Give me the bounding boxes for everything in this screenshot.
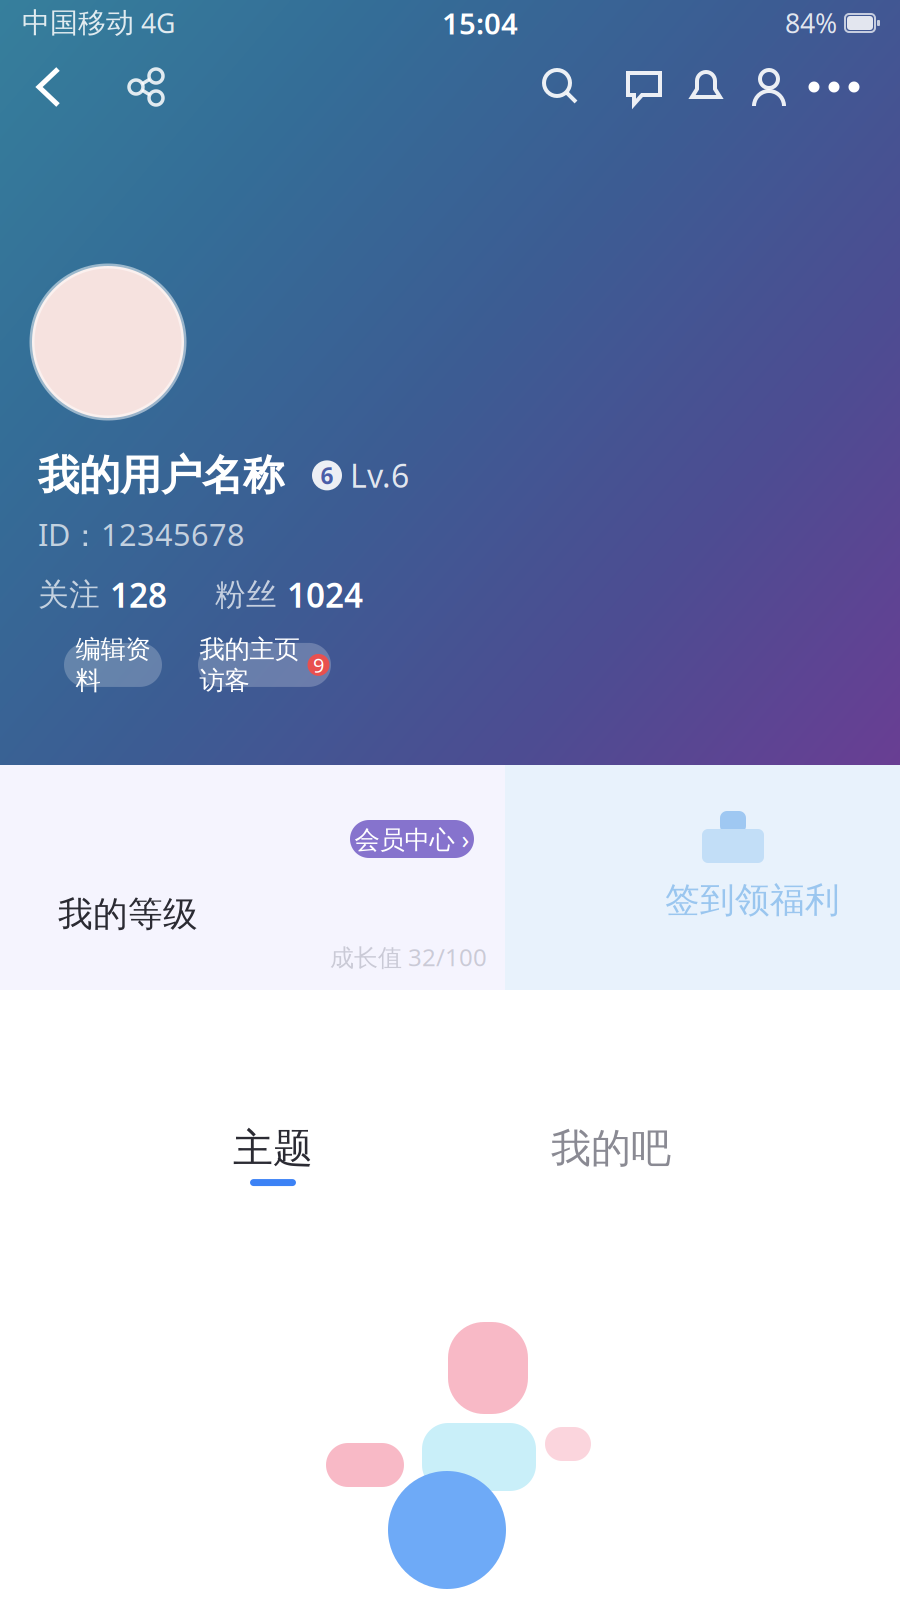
- staticText: 我的等级: [58, 893, 198, 936]
- staticText: 6: [320, 460, 333, 490]
- staticText: 4G: [134, 5, 175, 41]
- staticText: 128: [110, 573, 167, 617]
- staticText: 签到领福利: [665, 879, 840, 922]
- button[interactable]: 头像: [32, 266, 184, 418]
- button[interactable]: 返回: [21, 56, 83, 118]
- button[interactable]: 通知: [677, 58, 735, 116]
- staticText: 编辑资料: [75, 634, 150, 696]
- button[interactable]: 主题: [148, 1090, 398, 1220]
- staticText: Lv.6: [350, 454, 409, 497]
- button[interactable]: 编辑资料: [64, 643, 162, 687]
- staticText: 我的用户名称: [38, 450, 284, 501]
- staticText: 我的主页访客: [199, 634, 299, 696]
- button[interactable]: 更多: [798, 58, 870, 116]
- button[interactable]: 会员中心 ›: [0, 765, 505, 990]
- button[interactable]: 关注: [38, 573, 167, 617]
- staticText: 中国移动: [22, 6, 134, 40]
- button[interactable]: 粉丝: [215, 573, 363, 617]
- staticText: 15:04: [442, 3, 518, 42]
- button[interactable]: 搜索: [531, 58, 589, 116]
- staticText: ID：12345678: [38, 514, 245, 555]
- button[interactable]: 我的吧: [486, 1090, 736, 1220]
- staticText: 84%: [785, 5, 837, 41]
- button[interactable]: 消息: [615, 58, 673, 116]
- button[interactable]: 我的主页访客: [198, 643, 331, 687]
- staticText: 粉丝: [215, 576, 277, 614]
- button[interactable]: 分享: [117, 58, 175, 116]
- staticText: 成长值 32/100: [330, 941, 487, 973]
- staticText: 关注: [38, 576, 100, 614]
- staticText: 我的吧: [551, 1124, 671, 1173]
- button[interactable]: 个人中心: [740, 58, 798, 116]
- staticText: 会员中心 ›: [354, 822, 469, 856]
- button[interactable]: 签到领福利: [505, 765, 900, 990]
- staticText: 9: [313, 652, 324, 678]
- staticText: 主题: [233, 1124, 313, 1173]
- staticText: 1024: [287, 573, 363, 617]
